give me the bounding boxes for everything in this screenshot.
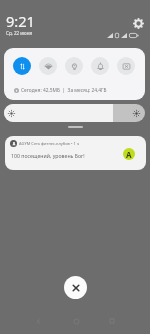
- button[interactable]: Wi-Fi: [39, 57, 57, 75]
- button[interactable]: Flashlight: [65, 57, 83, 75]
- button[interactable]: Close notifications: [64, 276, 87, 299]
- staticText: 9:21: [6, 11, 35, 31]
- staticText: A: [126, 149, 132, 160]
- staticText: Ср, 22 июня: [6, 30, 33, 36]
- button[interactable]: Screenshot: [117, 57, 135, 75]
- button[interactable]: Sound: [91, 57, 109, 75]
- button[interactable]: Brightness: [4, 104, 145, 122]
- staticText: AGYM Сеть фитнес-клубов • 1 ч: [19, 141, 80, 146]
- staticText: Сегодня: 42,5МБ | За месяц: 24,4ГБ: [21, 87, 107, 94]
- staticText: 100 посещений, уровень Бог!: [11, 152, 85, 159]
- button[interactable]: Mobile data: [13, 57, 31, 75]
- button[interactable]: Settings: [133, 18, 144, 29]
- button[interactable]: AGYM Сеть фитнес-клубов • 1 ч: [5, 136, 146, 170]
